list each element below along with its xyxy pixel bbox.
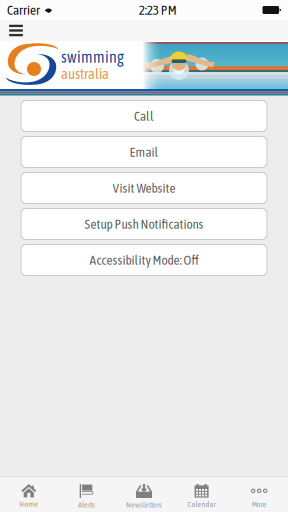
- button[interactable]: More: [230, 477, 288, 512]
- button[interactable]: Call: [21, 100, 267, 131]
- staticText: Setup Push Notifications: [84, 216, 203, 232]
- staticText: Home: [19, 499, 38, 509]
- staticText: Email: [129, 144, 158, 160]
- staticText: Accessibility Mode: Off: [89, 252, 198, 268]
- staticText: Call: [134, 108, 154, 124]
- staticText: Carrier: [7, 2, 40, 18]
- staticText: Newsletters: [126, 500, 162, 509]
- button[interactable]: Alerts: [58, 477, 115, 512]
- button[interactable]: Accessibility Mode: Off: [21, 244, 267, 275]
- staticText: 2:23 PM: [139, 2, 177, 18]
- staticText: More: [252, 500, 267, 509]
- button[interactable]: Home: [0, 477, 58, 512]
- staticText: Calendar: [188, 500, 216, 509]
- button[interactable]: Menu: [0, 20, 32, 41]
- staticText: swimming: [61, 48, 124, 66]
- button[interactable]: Calendar: [173, 477, 230, 512]
- staticText: australia: [61, 65, 109, 82]
- button[interactable]: Newsletters: [115, 477, 173, 512]
- button[interactable]: Setup Push Notifications: [21, 208, 267, 239]
- button[interactable]: Email: [21, 136, 267, 167]
- button[interactable]: Visit Website: [21, 172, 267, 203]
- staticText: Visit Website: [112, 180, 175, 196]
- staticText: Alerts: [78, 500, 95, 509]
